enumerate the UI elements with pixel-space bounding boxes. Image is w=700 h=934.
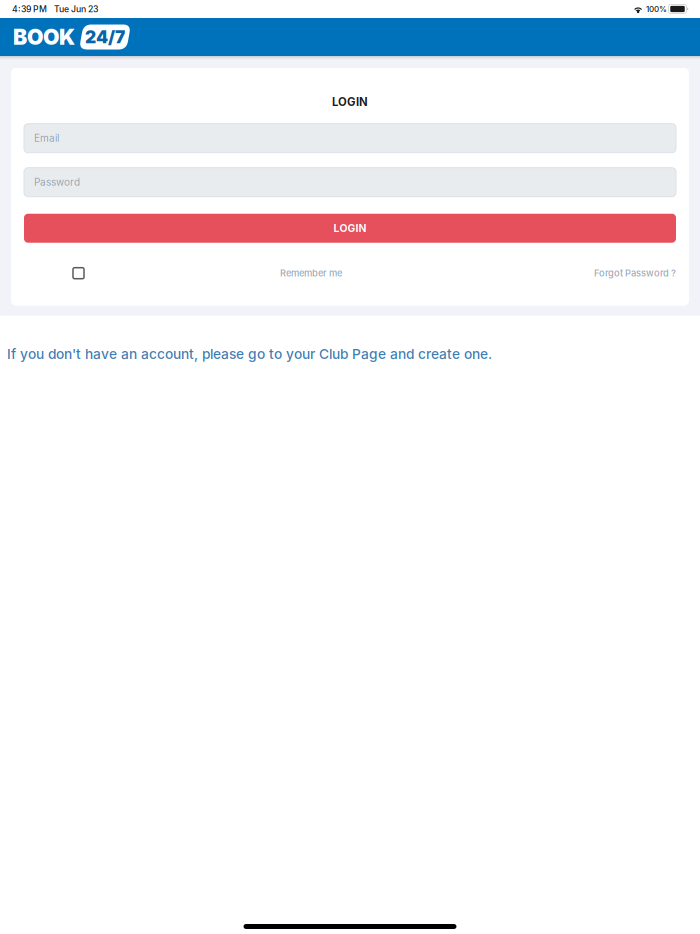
staticText: If you don't have an account, please go … bbox=[7, 346, 492, 362]
button[interactable]: Remember me bbox=[274, 262, 348, 285]
staticText: Password bbox=[34, 176, 80, 188]
staticText: 100% bbox=[646, 4, 667, 14]
button[interactable]: Forgot Password ? bbox=[588, 262, 676, 285]
staticText: Email bbox=[34, 132, 59, 144]
staticText: LOGIN bbox=[332, 95, 368, 109]
staticText: Forgot Password ? bbox=[594, 268, 676, 279]
button[interactable]: Remember me checkbox bbox=[66, 261, 91, 286]
staticText: BOOK bbox=[13, 24, 75, 50]
button[interactable]: If you don't have an account, please go … bbox=[7, 346, 492, 362]
staticText: LOGIN bbox=[333, 222, 366, 234]
staticText: Tue Jun 23 bbox=[54, 4, 98, 14]
staticText: Remember me bbox=[280, 268, 342, 279]
button[interactable]: LOGIN bbox=[24, 214, 676, 243]
staticText: 24/7 bbox=[85, 26, 125, 47]
staticText: 4:39 PM bbox=[12, 4, 47, 14]
